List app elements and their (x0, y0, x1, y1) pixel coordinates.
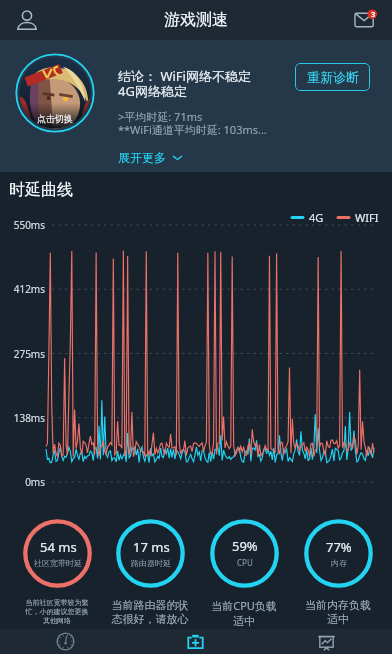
button[interactable]: 77% (304, 519, 373, 588)
staticText: 点击切换 (37, 113, 73, 124)
staticText: 当前内存负载适中 (303, 598, 373, 626)
staticText: 4G (309, 210, 324, 225)
staticText: **WiFi通道平均时延: 103ms... (118, 122, 267, 137)
staticText: CPU (237, 557, 253, 568)
staticText: 54 ms (40, 538, 77, 556)
staticText: WIFI (355, 210, 379, 225)
staticText: 当前路由器的状态很好，请放心 (110, 598, 190, 626)
staticText: 内存 (331, 558, 347, 568)
staticText: 时延曲线 (9, 180, 73, 200)
staticText: 17 ms (133, 538, 170, 556)
button[interactable]: 测速 (0, 629, 130, 654)
button[interactable]: 消息 (352, 6, 380, 34)
staticText: 结论： WiFi网络不稳定 (118, 67, 251, 85)
staticText: 59% (232, 537, 258, 555)
staticText: >平均时延: 71ms (118, 109, 203, 124)
staticText: 3 (371, 9, 376, 19)
button[interactable]: 17 ms (116, 519, 185, 588)
button[interactable]: 点击切换游戏 (15, 53, 95, 133)
button[interactable]: 重新诊断 (295, 63, 370, 91)
button[interactable]: 诊断 (130, 629, 261, 654)
staticText: 展开更多 (118, 150, 166, 165)
button[interactable]: 59% (210, 519, 279, 588)
staticText: 当前社区宽带较为繁忙，小的建议您更换其他网络 (24, 598, 90, 625)
staticText: 138ms (0, 411, 45, 425)
staticText: 路由器时延 (131, 558, 171, 568)
staticText: 77% (326, 538, 352, 556)
button[interactable]: 个人中心 (14, 7, 40, 33)
staticText: 4G网络稳定 (118, 82, 187, 100)
staticText: 550ms (0, 218, 45, 232)
staticText: 0ms (0, 475, 45, 489)
staticText: 275ms (0, 347, 45, 361)
staticText: 重新诊断 (307, 69, 359, 85)
button[interactable]: 报告 (261, 629, 392, 654)
button[interactable]: 54 ms (23, 519, 92, 588)
staticText: 游戏测速 (164, 10, 228, 30)
staticText: 社区宽带时延 (34, 558, 82, 568)
staticText: 412ms (0, 282, 45, 296)
staticText: 当前CPU负载适中 (211, 598, 277, 628)
button[interactable]: 展开更多 (118, 150, 183, 165)
